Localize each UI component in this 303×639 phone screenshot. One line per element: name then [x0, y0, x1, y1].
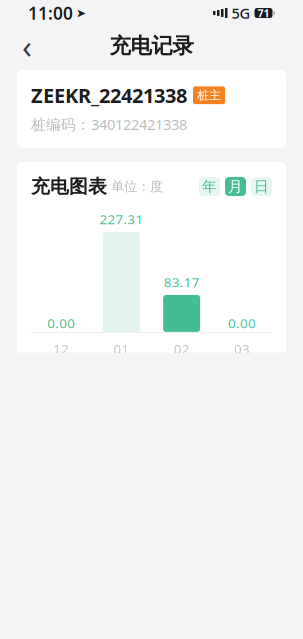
staticText: 5G [231, 3, 250, 23]
button[interactable]: 年 [199, 177, 220, 196]
staticText: 充电记录 [109, 33, 193, 59]
staticText: 年 [202, 177, 217, 195]
staticText: 桩编码：340122421338 [31, 115, 187, 134]
staticText: 0.00 [47, 314, 75, 332]
staticText: ‹ [22, 25, 32, 67]
staticText: 02 [174, 340, 190, 358]
staticText: 03 [234, 340, 250, 358]
staticText: 单位：度 [111, 178, 163, 195]
staticText: 日 [254, 177, 269, 195]
button[interactable]: Back [8, 27, 46, 65]
staticText: 11:00 [28, 1, 73, 24]
staticText: 充电图表 [31, 175, 107, 198]
staticText: 0.00 [228, 314, 256, 332]
staticText: 83.17 [164, 273, 200, 291]
staticText: 12 [53, 340, 69, 358]
button[interactable]: 日 [251, 177, 272, 196]
staticText: 桩主 [197, 88, 221, 103]
staticText: 71 [257, 6, 269, 20]
staticText: ➤ [76, 6, 86, 20]
staticText: 月 [228, 177, 243, 195]
button[interactable]: 月 [225, 177, 246, 196]
staticText: 01 [113, 340, 129, 358]
staticText: ZEEKR_22421338 [31, 82, 187, 109]
staticText: 227.31 [99, 210, 143, 228]
